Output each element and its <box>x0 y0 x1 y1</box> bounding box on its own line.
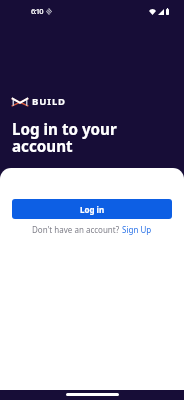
staticText: Sign Up <box>122 224 152 235</box>
staticText: Don't have an account? <box>32 224 122 235</box>
staticText: BUILD <box>32 95 66 108</box>
button[interactable]: Sign Up <box>122 224 152 235</box>
staticText: 6:10 <box>31 6 43 16</box>
staticText: Log in to your account <box>12 119 117 157</box>
button[interactable]: Log in <box>12 199 172 219</box>
staticText: Log in <box>80 204 105 215</box>
